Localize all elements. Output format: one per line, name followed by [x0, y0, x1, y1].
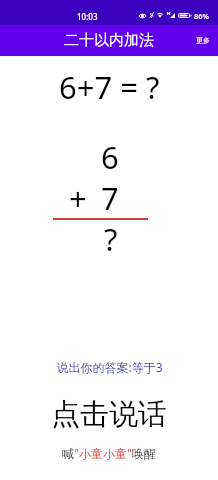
staticText: 6+7 = ? [59, 66, 160, 108]
staticText: 点击说话 [51, 396, 167, 433]
staticText: 二十以内加法 [64, 31, 154, 50]
button[interactable]: 点击说话 [39, 393, 179, 436]
staticText: 喊"小童小童"唤醒 [62, 445, 156, 461]
staticText: 说出你的答案:等于3 [56, 359, 163, 375]
staticText: ? [104, 218, 118, 260]
button[interactable]: 更多 [188, 28, 218, 53]
staticText: + [69, 177, 87, 219]
staticText: 86% [194, 11, 209, 21]
staticText: 10:03 [77, 11, 98, 22]
staticText: 更多 [196, 36, 210, 45]
staticText: 7 [101, 177, 119, 219]
staticText: 6 [101, 136, 119, 178]
